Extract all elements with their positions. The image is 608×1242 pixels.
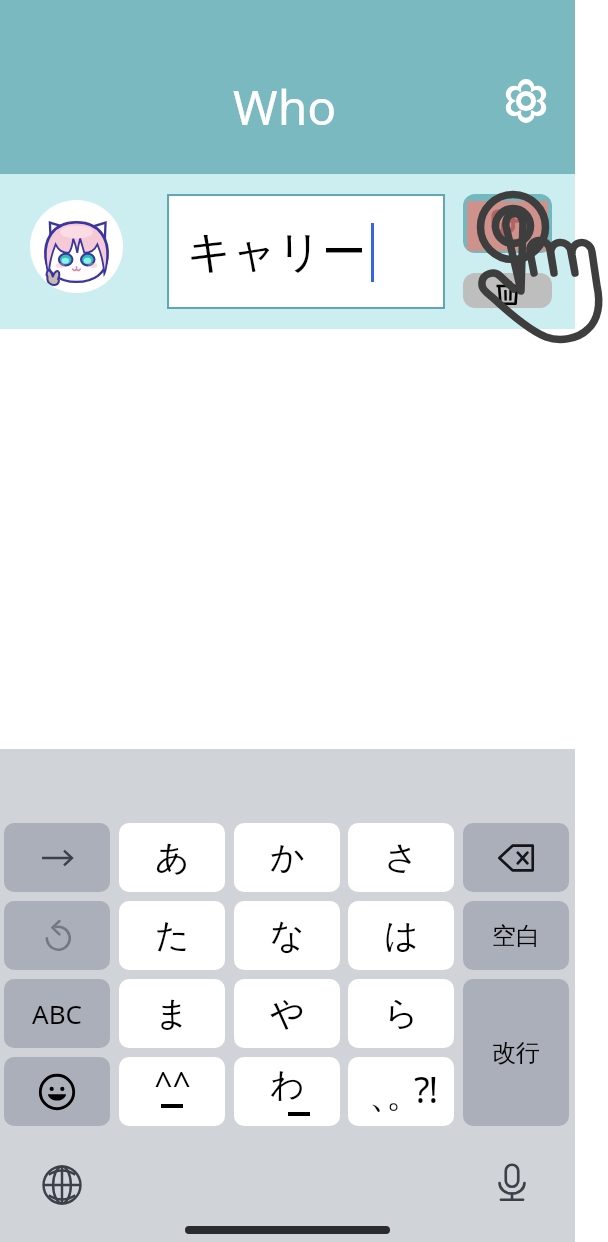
button[interactable]: undo	[4, 901, 110, 970]
button[interactable]: わ	[234, 1057, 340, 1126]
button[interactable]: 、	[348, 1057, 454, 1126]
button[interactable]: や	[234, 979, 340, 1048]
staticText: 改行	[492, 1038, 540, 1068]
button[interactable]: は	[348, 901, 454, 970]
button[interactable]: Dictation	[488, 1158, 536, 1206]
button[interactable]: ^^	[119, 1057, 225, 1126]
staticText: は	[384, 914, 419, 957]
staticText: 、	[369, 1072, 405, 1117]
button[interactable]: Delete	[463, 273, 552, 308]
staticText: ^^	[154, 1062, 191, 1106]
staticText: キャリー	[187, 225, 367, 280]
button[interactable]: Avatar	[30, 200, 123, 293]
staticText: ま	[155, 992, 190, 1035]
button[interactable]: 改行	[463, 979, 569, 1126]
staticText: た	[155, 914, 190, 957]
staticText: か	[270, 836, 305, 879]
button[interactable]: な	[234, 901, 340, 970]
button[interactable]: ABC	[4, 979, 110, 1048]
staticText: 。	[386, 1072, 422, 1117]
staticText: な	[270, 914, 305, 957]
staticText: わ	[270, 1063, 305, 1106]
staticText: ABC	[32, 996, 82, 1031]
staticText: ら	[384, 992, 419, 1035]
button[interactable]: ま	[119, 979, 225, 1048]
button[interactable]: あ	[119, 823, 225, 892]
button[interactable]: か	[234, 823, 340, 892]
button[interactable]: た	[119, 901, 225, 970]
staticText: ?!	[414, 1065, 438, 1114]
staticText: あ	[155, 836, 190, 879]
button[interactable]: キャリー	[167, 194, 445, 309]
button[interactable]: arrow	[4, 823, 110, 892]
staticText: や	[270, 992, 305, 1035]
button[interactable]: Settings	[502, 77, 550, 125]
button[interactable]: Copy	[463, 194, 552, 253]
button[interactable]: 空白	[463, 901, 569, 970]
staticText: Who	[233, 74, 337, 139]
staticText: さ	[384, 836, 419, 879]
button[interactable]: さ	[348, 823, 454, 892]
button[interactable]: Change keyboard	[40, 1163, 84, 1207]
staticText: 空白	[492, 921, 540, 951]
button[interactable]: emoji	[4, 1057, 110, 1126]
button[interactable]: ら	[348, 979, 454, 1048]
button[interactable]: backspace	[463, 823, 569, 892]
